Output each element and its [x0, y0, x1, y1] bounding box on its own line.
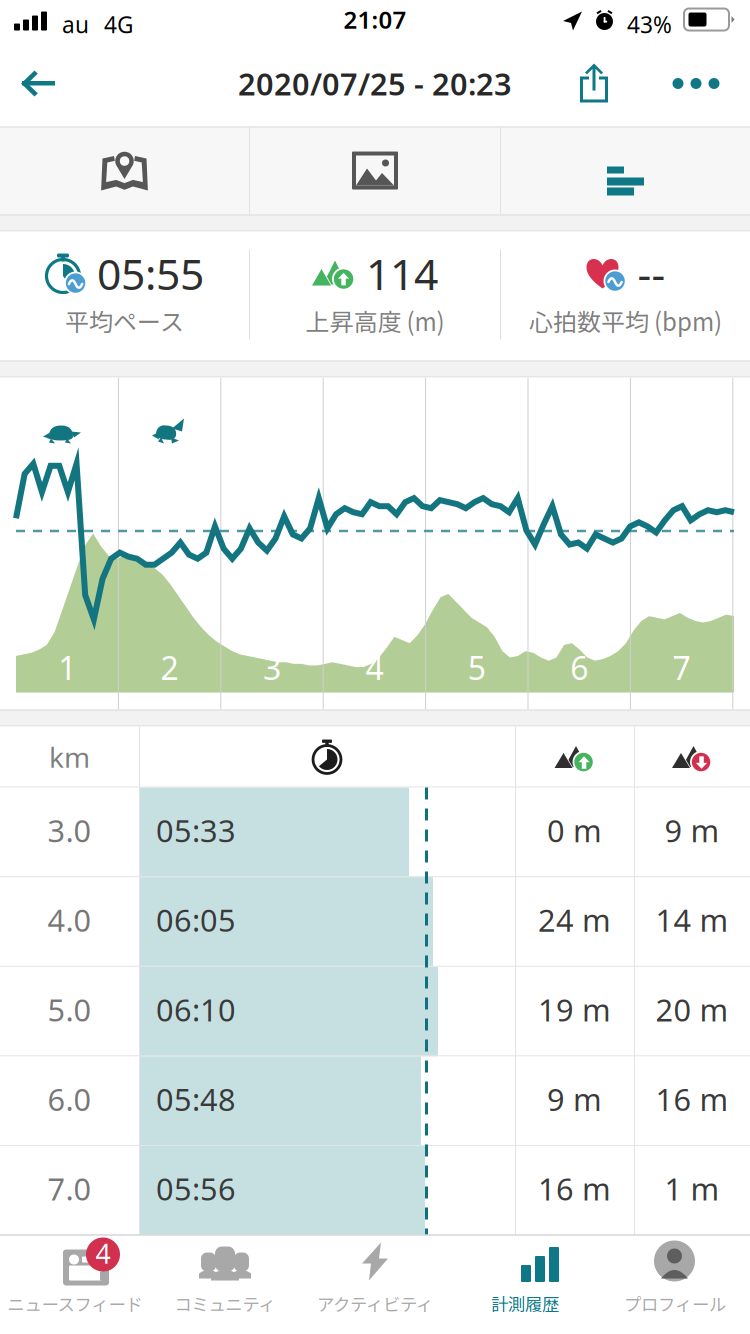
- staticText: 14 m: [655, 899, 728, 940]
- staticText: 06:05: [156, 899, 236, 940]
- staticText: 05:48: [156, 1079, 236, 1119]
- staticText: 1 m: [664, 1168, 719, 1209]
- staticText: 6.0: [47, 1079, 91, 1119]
- staticText: 3: [263, 646, 281, 689]
- staticText: 心拍数平均 (bpm): [529, 303, 722, 338]
- staticText: 43%: [627, 9, 672, 40]
- button[interactable]: アクティビティ: [300, 1234, 450, 1333]
- staticText: 3.0: [47, 810, 91, 851]
- staticText: 19 m: [538, 989, 611, 1030]
- staticText: 上昇高度 (m): [305, 303, 444, 338]
- staticText: 05:33: [156, 810, 236, 851]
- staticText: 7: [673, 646, 691, 689]
- button[interactable]: プロフィール: [600, 1234, 750, 1333]
- staticText: 4: [95, 1236, 110, 1271]
- staticText: 4G: [104, 9, 134, 40]
- button[interactable]: More options: [648, 40, 744, 126]
- staticText: 21:07: [343, 4, 406, 35]
- staticText: 4.0: [47, 899, 91, 940]
- staticText: 06:10: [156, 989, 236, 1030]
- staticText: 1: [58, 646, 76, 689]
- staticText: 05:56: [156, 1168, 236, 1209]
- staticText: 16 m: [655, 1079, 728, 1119]
- staticText: --: [637, 245, 665, 302]
- staticText: 16 m: [538, 1168, 611, 1209]
- staticText: 平均ペース: [65, 303, 184, 338]
- staticText: アクティビティ: [317, 1291, 433, 1316]
- staticText: 6: [570, 646, 588, 689]
- staticText: 9 m: [664, 810, 719, 851]
- button[interactable]: Back: [0, 40, 76, 126]
- staticText: 0 m: [547, 810, 602, 851]
- staticText: 05:55: [97, 245, 204, 302]
- staticText: au: [62, 9, 89, 40]
- staticText: 5.0: [47, 989, 91, 1030]
- staticText: 2020/07/25 - 20:23: [238, 63, 512, 104]
- button[interactable]: 4: [0, 1234, 150, 1333]
- button[interactable]: Photos: [250, 126, 500, 214]
- staticText: ニュースフィード: [7, 1291, 142, 1316]
- staticText: 4: [365, 646, 383, 689]
- staticText: 5: [468, 646, 486, 689]
- button[interactable]: コミュニティ: [150, 1234, 300, 1333]
- staticText: 20 m: [655, 989, 728, 1030]
- staticText: km: [49, 738, 90, 776]
- staticText: プロフィール: [624, 1291, 726, 1316]
- staticText: 計測履歴: [491, 1291, 559, 1316]
- button[interactable]: 計測履歴: [450, 1234, 600, 1333]
- button[interactable]: Share: [552, 40, 636, 126]
- staticText: コミュニティ: [174, 1291, 275, 1316]
- staticText: 7.0: [47, 1168, 91, 1209]
- button[interactable]: Splits: [501, 126, 750, 214]
- staticText: 2: [161, 646, 179, 689]
- staticText: 9 m: [547, 1079, 602, 1119]
- staticText: 24 m: [538, 899, 611, 940]
- staticText: 114: [366, 245, 438, 302]
- button[interactable]: Map: [0, 126, 249, 214]
